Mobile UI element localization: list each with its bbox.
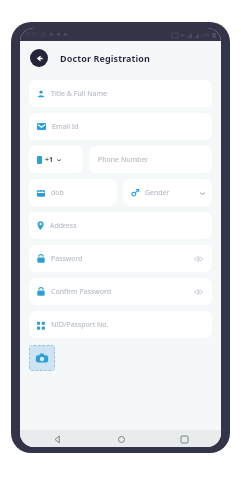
button[interactable]: Confirm Password <box>29 278 212 305</box>
button[interactable]: dob <box>29 179 117 206</box>
button[interactable]: +1 <box>29 146 83 173</box>
button[interactable]: Title & Full Name <box>29 80 212 107</box>
button[interactable]: Back <box>50 432 64 446</box>
staticText: Gender <box>145 188 200 198</box>
button[interactable]: Password <box>29 245 212 272</box>
staticText: Password <box>51 254 83 264</box>
staticText: 34% <box>201 32 210 38</box>
staticText: 12:01 <box>25 31 38 38</box>
staticText: dob <box>51 188 64 198</box>
button[interactable]: Address <box>29 212 212 239</box>
button[interactable]: Recent apps <box>177 432 191 446</box>
button[interactable]: NID/Passport No. <box>29 311 212 338</box>
staticText: Confirm Password <box>51 287 112 297</box>
button[interactable]: Back <box>30 49 48 67</box>
button[interactable]: Toggle password visibility <box>193 253 204 264</box>
staticText: NID/Passport No. <box>51 320 109 330</box>
staticText: Title & Full Name <box>51 89 107 99</box>
button[interactable]: Home <box>114 432 128 446</box>
button[interactable]: Upload photo <box>29 345 55 371</box>
staticText: Address <box>50 221 77 231</box>
staticText: Phone Number <box>98 155 149 165</box>
button[interactable]: Email Id <box>29 113 212 140</box>
staticText: +1 <box>45 155 54 165</box>
staticText: Doctor Registration <box>60 52 151 64</box>
button[interactable]: Toggle password visibility <box>193 286 204 297</box>
button[interactable]: Gender <box>123 179 212 206</box>
button[interactable]: Phone Number <box>89 146 212 173</box>
staticText: Email Id <box>52 122 79 132</box>
